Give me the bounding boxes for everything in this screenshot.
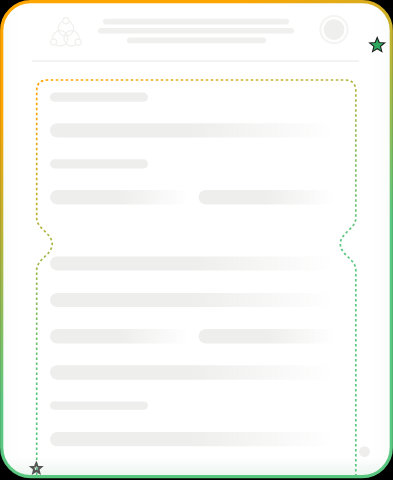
button[interactable]: Loading content: [0, 0, 393, 480]
